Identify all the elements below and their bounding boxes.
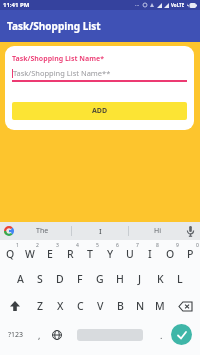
button[interactable]	[0, 292, 30, 320]
staticText: P	[187, 247, 194, 261]
button[interactable]: Q	[0, 240, 20, 266]
staticText: ?123	[8, 330, 24, 340]
staticText: H	[116, 272, 124, 286]
staticText: .	[160, 329, 163, 341]
button[interactable]: D	[50, 266, 70, 292]
staticText: B	[117, 299, 124, 313]
button[interactable]: N	[130, 292, 150, 320]
button[interactable]: M	[150, 292, 170, 320]
staticText: I	[99, 226, 102, 236]
button[interactable]: J	[130, 266, 150, 292]
button[interactable]: Z	[30, 292, 50, 320]
staticText: 8	[156, 242, 159, 249]
staticText: 2	[36, 242, 39, 249]
staticText: Task/Shopping List Name**	[13, 68, 111, 78]
button[interactable]: G	[90, 266, 110, 292]
button[interactable]: ,	[32, 320, 46, 349]
button[interactable]: B	[110, 292, 130, 320]
staticText: 3	[56, 242, 59, 249]
staticText: 1	[16, 242, 19, 249]
staticText: R	[67, 247, 74, 261]
staticText: ,	[38, 329, 41, 341]
staticText: 0	[196, 242, 199, 249]
staticText: 9	[176, 242, 179, 249]
button[interactable]	[4, 226, 14, 236]
staticText: F	[77, 272, 83, 286]
button[interactable]: .	[151, 320, 171, 349]
staticText: O	[166, 247, 175, 261]
staticText: N	[136, 299, 145, 313]
staticText: Y	[107, 247, 114, 261]
button[interactable]: A	[10, 266, 30, 292]
staticText: D	[56, 272, 64, 286]
staticText: G	[96, 272, 104, 286]
button[interactable]: R	[60, 240, 80, 266]
staticText: Task/Shopping List	[7, 19, 101, 33]
staticText: K	[157, 272, 164, 286]
button[interactable]	[170, 292, 200, 320]
button[interactable]: W	[20, 240, 40, 266]
button[interactable]: Hi	[129, 222, 185, 240]
staticText: 5	[96, 242, 99, 249]
staticText: V	[97, 299, 104, 313]
staticText: E	[47, 247, 53, 261]
button[interactable]	[171, 324, 192, 345]
button[interactable]	[185, 226, 196, 237]
button[interactable]: ADD	[12, 102, 187, 120]
button[interactable]: U	[120, 240, 140, 266]
button[interactable]: K	[150, 266, 170, 292]
button[interactable]: E	[40, 240, 60, 266]
staticText: Z	[37, 299, 44, 313]
staticText: U	[126, 247, 134, 261]
staticText: L	[177, 272, 183, 286]
staticText: T	[87, 247, 93, 261]
staticText: Q	[6, 247, 15, 261]
button[interactable]: I	[72, 222, 128, 240]
button[interactable]: H	[110, 266, 130, 292]
staticText: C	[77, 299, 84, 313]
button[interactable]: ?123	[0, 320, 32, 349]
button[interactable]: X	[50, 292, 70, 320]
staticText: X	[57, 299, 64, 313]
staticText: 6	[116, 242, 119, 249]
staticText: A	[17, 272, 24, 286]
button[interactable]: L	[170, 266, 190, 292]
staticText: 4	[76, 242, 79, 249]
button[interactable]: C	[70, 292, 90, 320]
staticText: J	[138, 272, 142, 286]
staticText: 11:41 PM	[3, 1, 30, 9]
staticText: W	[25, 247, 35, 261]
button[interactable]: F	[70, 266, 90, 292]
staticText: I	[148, 247, 152, 261]
staticText: ADD	[92, 106, 108, 116]
button[interactable]	[46, 320, 68, 349]
staticText: Task/Shopping List Name*	[12, 54, 105, 64]
button[interactable]: The	[14, 222, 71, 240]
button[interactable]	[68, 320, 151, 349]
button[interactable]: P	[180, 240, 200, 266]
button[interactable]: O	[160, 240, 180, 266]
staticText: Hi	[154, 226, 161, 236]
button[interactable]: Task/Shopping List Name**	[12, 68, 187, 78]
staticText: S	[37, 272, 43, 286]
staticText: M	[155, 299, 165, 313]
button[interactable]: T	[80, 240, 100, 266]
staticText: 7	[136, 242, 139, 249]
button[interactable]: Y	[100, 240, 120, 266]
staticText: ...	[135, 1, 140, 8]
staticText: VoLTE	[171, 2, 185, 8]
button[interactable]: I	[140, 240, 160, 266]
button[interactable]: V	[90, 292, 110, 320]
staticText: The	[36, 226, 49, 236]
button[interactable]: S	[30, 266, 50, 292]
